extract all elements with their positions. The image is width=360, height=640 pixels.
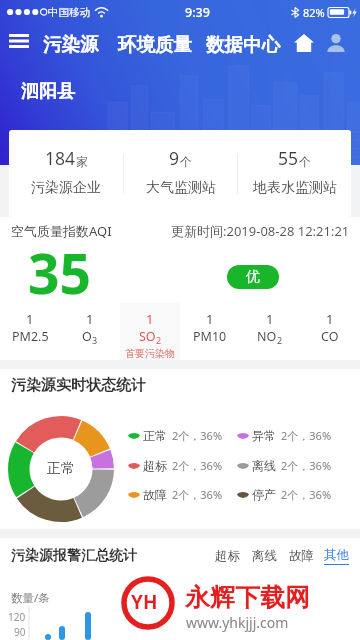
staticText: 2个，36% (172, 487, 223, 502)
button[interactable]: 故障 (284, 545, 319, 567)
staticText: O (82, 328, 92, 345)
button[interactable]: 离线 (247, 545, 282, 567)
staticText: 正常 (47, 460, 75, 478)
staticText: PM2.5 (12, 328, 49, 345)
staticText: 污染源 (43, 33, 99, 56)
staticText: NO (257, 328, 277, 345)
staticText: 2个，36% (281, 428, 332, 443)
staticText: 停产 (252, 487, 276, 502)
staticText: 泗阳县 (21, 80, 75, 103)
button[interactable]: 污染源 (39, 28, 103, 61)
staticText: 永辉下载网 (185, 582, 310, 613)
staticText: 120 (8, 610, 26, 624)
button[interactable]: 离线 (237, 458, 332, 473)
staticText: 环境质量 (118, 33, 192, 56)
staticText: 数量/条 (11, 590, 50, 606)
button[interactable]: 超标 (128, 458, 223, 473)
staticText: 家 (76, 154, 88, 169)
button[interactable]: 优 (227, 265, 279, 289)
staticText: 3 (92, 334, 98, 346)
button[interactable]: 1 (0, 303, 60, 360)
staticText: 污染源实时状态统计 (11, 376, 146, 395)
staticText: SO (139, 328, 156, 345)
staticText: 1 (146, 310, 154, 328)
button[interactable]: 1 (240, 303, 300, 360)
button[interactable]: 1 (120, 303, 180, 360)
staticText: PM10 (193, 328, 227, 345)
staticText: 数据中心 (206, 33, 280, 56)
staticText: 离线 (252, 458, 276, 473)
staticText: 空气质量指数AQI (11, 222, 112, 240)
staticText: 55 (278, 146, 299, 170)
button[interactable]: 超标 (210, 545, 245, 567)
staticText: 1 (86, 310, 94, 328)
staticText: 首要污染物 (125, 347, 175, 360)
staticText: 大气监测站 (146, 179, 216, 197)
staticText: 故障 (143, 487, 167, 502)
staticText: 地表水监测站 (253, 179, 337, 197)
staticText: 1 (206, 310, 214, 328)
staticText: 82% (303, 5, 325, 20)
staticText: 9 (169, 146, 180, 170)
button[interactable]: 正常 (128, 428, 223, 443)
staticText: 2个，36% (281, 487, 332, 502)
staticText: YH (131, 589, 158, 615)
staticText: 184 (45, 146, 76, 170)
staticText: 9:39 (185, 4, 210, 21)
button[interactable]: 1 (180, 303, 240, 360)
staticText: 个 (180, 154, 192, 169)
staticText: 污染源报警汇总统计 (11, 547, 137, 565)
button[interactable]: 9 (124, 130, 237, 217)
button[interactable]: 异常 (237, 428, 332, 443)
button[interactable]: Menu (3, 28, 35, 54)
staticText: 90 (14, 625, 26, 639)
button[interactable]: 其他 (321, 547, 352, 565)
button[interactable]: 停产 (237, 487, 332, 502)
staticText: 1 (266, 310, 274, 328)
button[interactable]: Home (289, 29, 319, 57)
button[interactable]: 1 (300, 303, 360, 360)
staticText: 2个，36% (172, 428, 223, 443)
staticText: 正常 (143, 428, 167, 443)
staticText: 35 (28, 235, 91, 310)
button[interactable]: 1 (60, 303, 120, 360)
staticText: 中国移动 (48, 6, 90, 19)
staticText: 超标 (143, 458, 167, 473)
button[interactable]: 184 (9, 130, 123, 217)
staticText: 1 (26, 310, 34, 328)
staticText: 污染源企业 (31, 179, 101, 197)
staticText: 更新时间:2019-08-28 12:21:21 (171, 222, 350, 240)
staticText: 其他 (324, 547, 349, 563)
staticText: 2个，36% (281, 458, 332, 473)
button[interactable]: 55 (238, 130, 351, 217)
button[interactable]: 故障 (128, 487, 223, 502)
staticText: 优 (246, 268, 260, 286)
staticText: 2 (156, 334, 162, 346)
staticText: 1 (326, 310, 334, 328)
button[interactable]: Profile (322, 29, 350, 57)
staticText: 2 (277, 334, 283, 346)
staticText: www.yhkjjj.com (186, 613, 289, 632)
staticText: 2个，36% (172, 458, 223, 473)
button[interactable]: 数据中心 (202, 28, 284, 61)
staticText: 异常 (252, 428, 276, 443)
staticText: 个 (299, 154, 311, 169)
button[interactable]: 环境质量 (114, 28, 196, 61)
staticText: CO (321, 328, 339, 345)
